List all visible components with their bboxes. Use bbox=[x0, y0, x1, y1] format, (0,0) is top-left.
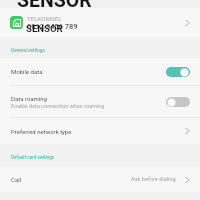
button[interactable]: Toggle on bbox=[166, 67, 190, 77]
button[interactable]: Mobile data bbox=[0, 58, 200, 85]
button[interactable]: Toggle off bbox=[166, 97, 190, 107]
staticText: SENSOR bbox=[26, 23, 63, 34]
staticText: Default card settings bbox=[11, 155, 55, 161]
staticText: SENSOR bbox=[17, 0, 92, 12]
staticText: TELKOMSEL bbox=[27, 15, 62, 22]
button[interactable]: TELKOMSEL bbox=[0, 8, 200, 37]
staticText: General settings bbox=[11, 48, 45, 54]
staticText: Data roaming bbox=[11, 95, 47, 102]
staticText: Call bbox=[11, 176, 22, 183]
staticText: Enable data connection when roaming bbox=[11, 103, 105, 109]
staticText: Mobile data bbox=[11, 68, 43, 75]
button[interactable]: Preferred network type bbox=[0, 118, 200, 144]
staticText: Preferred network type bbox=[11, 128, 72, 135]
button[interactable]: Call bbox=[0, 167, 200, 192]
button[interactable]: Data roaming bbox=[0, 86, 200, 117]
staticText: 0812 3456 789 bbox=[27, 22, 78, 31]
staticText: Ask before dialing bbox=[131, 176, 176, 183]
